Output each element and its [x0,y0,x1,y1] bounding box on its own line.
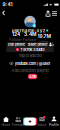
button[interactable]: Back [1,9,8,17]
button[interactable]: Edit profile [6,42,26,47]
button[interactable]: Create [24,114,36,128]
button[interactable]: Find friends [48,42,54,47]
staticText: Add collection playlist [11,68,48,73]
staticText: Friends [12,123,24,127]
button[interactable]: Home [0,114,12,128]
staticText: Likes [39,40,48,44]
button[interactable]: Friends [12,114,24,128]
button[interactable]: Share profile [27,42,47,47]
button[interactable]: TikTok Studio [6,47,54,52]
button[interactable]: Menu [51,9,58,17]
staticText: Home [1,123,10,127]
staticText: Tap to add bio [18,53,41,58]
staticText: Profile [49,123,59,127]
staticText: username-xyz [12,28,46,33]
button[interactable]: 124 [9,34,23,43]
button[interactable]: 19.7M [37,34,51,43]
staticText: Share profile [27,42,47,47]
staticText: Add [29,74,36,79]
staticText: Edit profile [8,42,25,47]
button[interactable]: youtube.com/@user [9,60,51,66]
button[interactable]: Add [28,74,37,79]
staticText: + [52,43,54,47]
staticText: 3.4M [24,31,36,37]
staticText: 19.7M [37,33,50,39]
staticText: 9:41 [2,2,12,7]
button[interactable]: Profile photo [23,14,37,28]
staticText: Inbox [37,123,46,127]
staticText: 124 [12,31,20,37]
staticText: Following [9,38,22,46]
button[interactable]: Profile [48,114,60,128]
button[interactable]: Share profile [44,9,51,17]
button[interactable]: Inbox [36,114,48,128]
button[interactable]: 3.4M [23,34,37,43]
staticText: youtube.com/@user [15,61,51,66]
staticText: Followers [23,38,37,46]
staticText: TikTok Studio [20,47,44,52]
